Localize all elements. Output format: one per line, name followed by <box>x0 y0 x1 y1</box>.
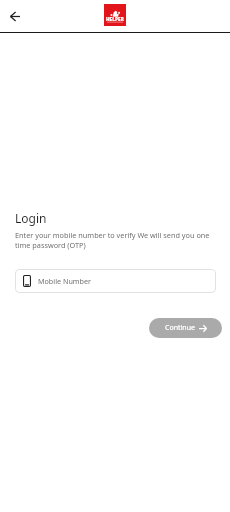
staticText: Login <box>15 210 47 226</box>
button[interactable]: Mobile Number <box>15 269 216 293</box>
staticText: Continue <box>165 323 195 333</box>
button[interactable]: Back <box>4 5 26 27</box>
staticText: Enter your mobile number to verify We wi… <box>15 230 216 250</box>
staticText: Mobile Number <box>38 276 91 286</box>
button[interactable]: Continue <box>149 318 222 338</box>
staticText: HELPER <box>106 16 124 22</box>
